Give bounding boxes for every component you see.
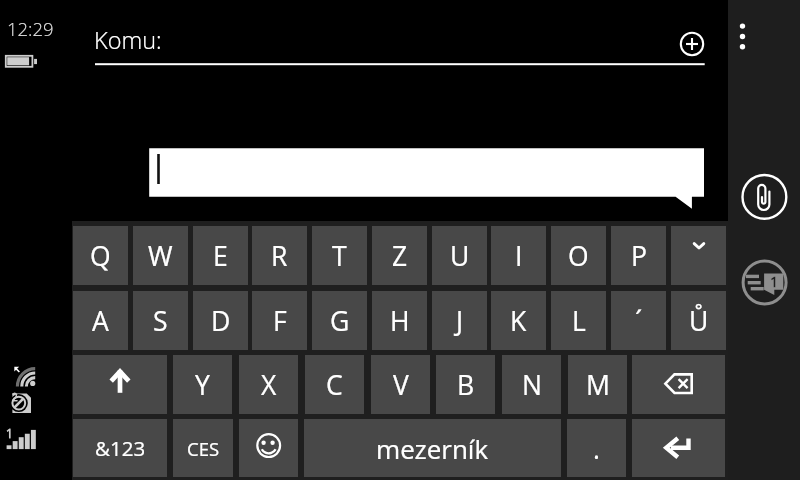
- button[interactable]: More options: [728, 8, 764, 64]
- button[interactable]: J: [432, 291, 487, 350]
- staticText: ´: [631, 303, 647, 339]
- staticText: K: [510, 303, 527, 339]
- button[interactable]: X: [239, 355, 298, 414]
- button[interactable]: Backspace: [632, 355, 725, 414]
- button[interactable]: Ů: [671, 291, 726, 350]
- button[interactable]: S: [133, 291, 188, 350]
- staticText: T: [332, 238, 347, 274]
- staticText: B: [457, 367, 475, 403]
- button[interactable]: Send message: [740, 258, 788, 306]
- button[interactable]: D: [193, 291, 248, 350]
- button[interactable]: C: [305, 355, 364, 414]
- button[interactable]: H: [372, 291, 427, 350]
- staticText: G: [330, 303, 350, 339]
- button[interactable]: Recipient field: [95, 20, 675, 66]
- button[interactable]: T: [312, 226, 367, 285]
- staticText: CES: [187, 436, 220, 461]
- button[interactable]: ´: [611, 291, 666, 350]
- staticText: I: [515, 238, 523, 274]
- staticText: mezerník: [376, 431, 489, 466]
- staticText: 1: [770, 272, 779, 292]
- staticText: 1: [6, 425, 13, 441]
- staticText: C: [326, 367, 343, 403]
- button[interactable]: O: [551, 226, 606, 285]
- button[interactable]: CES: [173, 419, 233, 477]
- button[interactable]: P: [611, 226, 666, 285]
- button[interactable]: I: [491, 226, 546, 285]
- button[interactable]: .: [567, 419, 626, 477]
- staticText: N: [522, 367, 542, 403]
- button[interactable]: Q: [73, 226, 128, 285]
- button[interactable]: mezerník: [304, 419, 561, 477]
- button[interactable]: G: [312, 291, 367, 350]
- staticText: Ů: [689, 303, 709, 339]
- staticText: U: [450, 238, 470, 274]
- staticText: S: [153, 303, 168, 339]
- staticText: L: [572, 303, 586, 339]
- staticText: M: [586, 367, 610, 403]
- button[interactable]: L: [551, 291, 606, 350]
- button[interactable]: Z: [372, 226, 427, 285]
- button[interactable]: Message text: [149, 148, 704, 197]
- button[interactable]: V: [371, 355, 430, 414]
- button[interactable]: K: [491, 291, 546, 350]
- staticText: P: [631, 238, 647, 274]
- staticText: Y: [195, 367, 210, 403]
- button[interactable]: Add recipient: [680, 32, 704, 56]
- staticText: 12:29: [7, 16, 54, 41]
- button[interactable]: R: [252, 226, 307, 285]
- staticText: R: [271, 238, 288, 274]
- staticText: Q: [90, 238, 111, 274]
- button[interactable]: B: [436, 355, 495, 414]
- button[interactable]: Hide keyboard: [671, 226, 726, 285]
- button[interactable]: M: [568, 355, 627, 414]
- button[interactable]: E: [193, 226, 248, 285]
- staticText: E: [213, 238, 228, 274]
- button[interactable]: A: [73, 291, 128, 350]
- staticText: D: [211, 303, 231, 339]
- staticText: H: [390, 303, 410, 339]
- staticText: J: [456, 303, 464, 339]
- staticText: &123: [95, 434, 146, 462]
- button[interactable]: N: [502, 355, 561, 414]
- button[interactable]: U: [432, 226, 487, 285]
- button[interactable]: Attach: [740, 173, 788, 221]
- button[interactable]: Enter: [632, 419, 725, 477]
- button[interactable]: W: [133, 226, 188, 285]
- staticText: A: [92, 303, 109, 339]
- button[interactable]: &123: [73, 419, 167, 477]
- button[interactable]: Emoji: [239, 419, 298, 477]
- staticText: .: [593, 431, 600, 466]
- staticText: V: [393, 367, 409, 403]
- staticText: Z: [392, 238, 408, 274]
- staticText: X: [261, 367, 277, 403]
- button[interactable]: Y: [173, 355, 232, 414]
- staticText: W: [148, 238, 173, 274]
- staticText: Komu:: [94, 24, 162, 56]
- staticText: O: [568, 238, 589, 274]
- staticText: F: [273, 303, 287, 339]
- button[interactable]: F: [252, 291, 307, 350]
- button[interactable]: Shift: [73, 355, 167, 414]
- staticText: 2: [12, 390, 18, 404]
